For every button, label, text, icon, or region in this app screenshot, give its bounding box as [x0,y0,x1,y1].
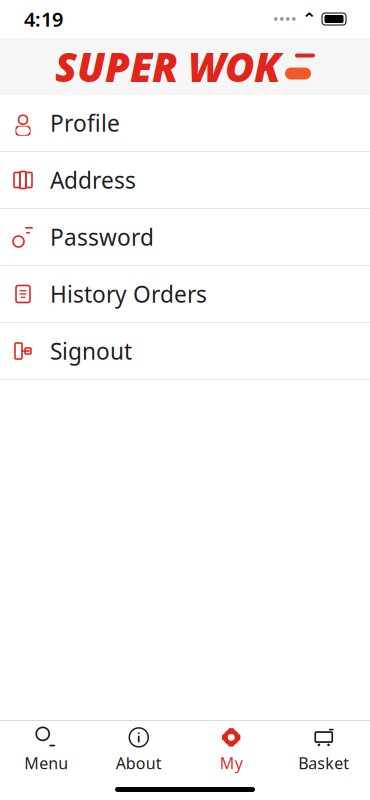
button[interactable]: Menu [0,718,92,780]
staticText: 4:19 [24,6,63,32]
staticText: •••• [273,9,297,29]
staticText: Menu [24,752,68,774]
button[interactable]: About [92,718,185,780]
staticText: Signout [50,336,132,366]
staticText: About [116,752,162,774]
staticText: History Orders [50,279,207,309]
button[interactable]: History Orders [0,266,370,323]
staticText: Password [50,222,154,252]
button[interactable]: Basket [277,718,370,780]
button[interactable]: Signout [0,323,370,380]
staticText: Basket [298,752,349,774]
button[interactable]: My [185,718,277,780]
button[interactable]: Address [0,152,370,209]
staticText: SUPER WOK [55,40,281,93]
button[interactable]: Password [0,209,370,266]
staticText: Address [50,165,136,195]
button[interactable]: Profile [0,95,370,152]
staticText: My [220,752,243,774]
staticText: Profile [50,108,120,138]
staticText: ⌃ [302,9,317,29]
